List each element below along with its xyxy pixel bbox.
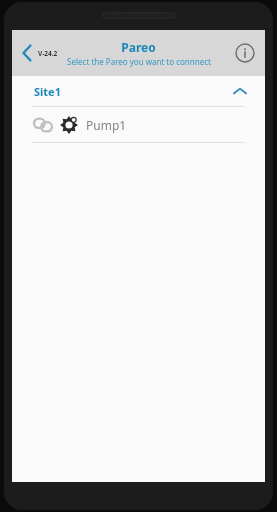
button[interactable]: Site1 bbox=[12, 76, 265, 106]
button[interactable]: Back bbox=[18, 40, 62, 66]
staticText: Pump1 bbox=[86, 117, 127, 133]
button[interactable]: Information bbox=[233, 41, 257, 65]
staticText: Site1 bbox=[34, 84, 61, 99]
button[interactable]: Pump1 bbox=[12, 107, 265, 142]
staticText: Select the Pareo you want to connnect bbox=[67, 56, 211, 67]
other: Back bbox=[22, 44, 32, 62]
staticText: Pareo bbox=[121, 39, 156, 55]
staticText: V-24.2 bbox=[38, 49, 58, 58]
other: Collapse section bbox=[233, 87, 247, 95]
